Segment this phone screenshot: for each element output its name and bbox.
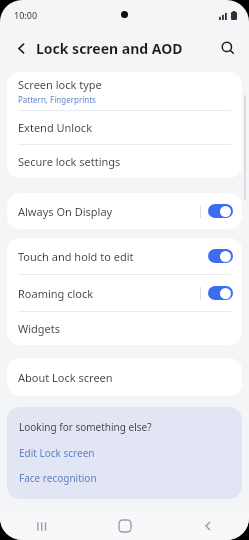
- staticText: Edit Lock screen: [19, 446, 95, 460]
- button[interactable]: Back: [166, 512, 249, 540]
- staticText: Looking for something else?: [19, 420, 152, 434]
- staticText: Extend Unlock: [18, 120, 93, 135]
- staticText: Widgets: [18, 321, 61, 336]
- button[interactable]: Always On Display: [7, 193, 242, 229]
- button[interactable]: Edit Lock screen: [19, 446, 230, 460]
- button[interactable]: About Lock screen: [7, 358, 242, 396]
- staticText: Lock screen and AOD: [36, 39, 183, 58]
- staticText: Touch and hold to edit: [18, 249, 208, 264]
- staticText: Always On Display: [18, 204, 200, 219]
- button[interactable]: Touch and hold to edit: [208, 249, 233, 263]
- staticText: Secure lock settings: [18, 154, 121, 169]
- button[interactable]: Extend Unlock: [7, 111, 242, 144]
- staticText: 10:00: [14, 9, 38, 21]
- staticText: Screen lock type: [18, 77, 102, 92]
- button[interactable]: Touch and hold to edit: [7, 238, 242, 274]
- button[interactable]: Always On Display: [208, 204, 233, 218]
- button[interactable]: Secure lock settings: [7, 145, 242, 178]
- staticText: Pattern, Fingerprints: [18, 94, 96, 105]
- button[interactable]: Recent apps: [0, 512, 83, 540]
- button[interactable]: Screen lock type: [7, 72, 242, 110]
- button[interactable]: Face recognition: [19, 471, 230, 485]
- button[interactable]: Home: [83, 512, 166, 540]
- button[interactable]: Roaming clock: [7, 275, 242, 311]
- button[interactable]: Roaming clock: [208, 286, 233, 300]
- staticText: About Lock screen: [18, 370, 113, 385]
- staticText: Roaming clock: [18, 286, 200, 301]
- button[interactable]: Search: [213, 33, 243, 63]
- button[interactable]: Widgets: [7, 312, 242, 345]
- button[interactable]: Back: [6, 33, 36, 63]
- staticText: Face recognition: [19, 471, 97, 485]
